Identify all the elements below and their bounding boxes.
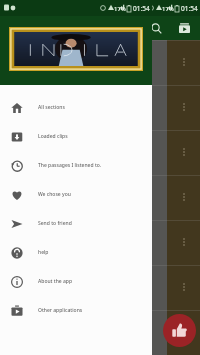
button[interactable]: help (0, 238, 152, 267)
staticText: Send to friend (38, 220, 72, 227)
staticText: All sections (38, 104, 65, 111)
button[interactable]: About the app (0, 267, 152, 296)
staticText: Loaded clips (38, 133, 68, 140)
staticText: About the app (38, 278, 73, 285)
button[interactable]: Like (163, 314, 196, 347)
staticText: We chose you (38, 191, 71, 198)
staticText: 17% (162, 5, 174, 13)
button[interactable]: Loaded clips (0, 122, 152, 151)
staticText: The passages I listened to. (38, 162, 102, 169)
button[interactable]: Search (144, 16, 168, 40)
button[interactable]: Video library (172, 16, 196, 40)
button[interactable]: Send to friend (0, 209, 152, 238)
staticText: 17% (114, 5, 126, 13)
button[interactable]: All sections (0, 93, 152, 122)
button[interactable]: Other applications (0, 296, 152, 325)
button[interactable]: We chose you (0, 180, 152, 209)
staticText: 01:54 (133, 4, 150, 13)
button[interactable]: The passages I listened to. (0, 151, 152, 180)
staticText: help (38, 249, 49, 256)
staticText: Other applications (38, 307, 83, 314)
staticText: 01:54 (181, 4, 198, 13)
